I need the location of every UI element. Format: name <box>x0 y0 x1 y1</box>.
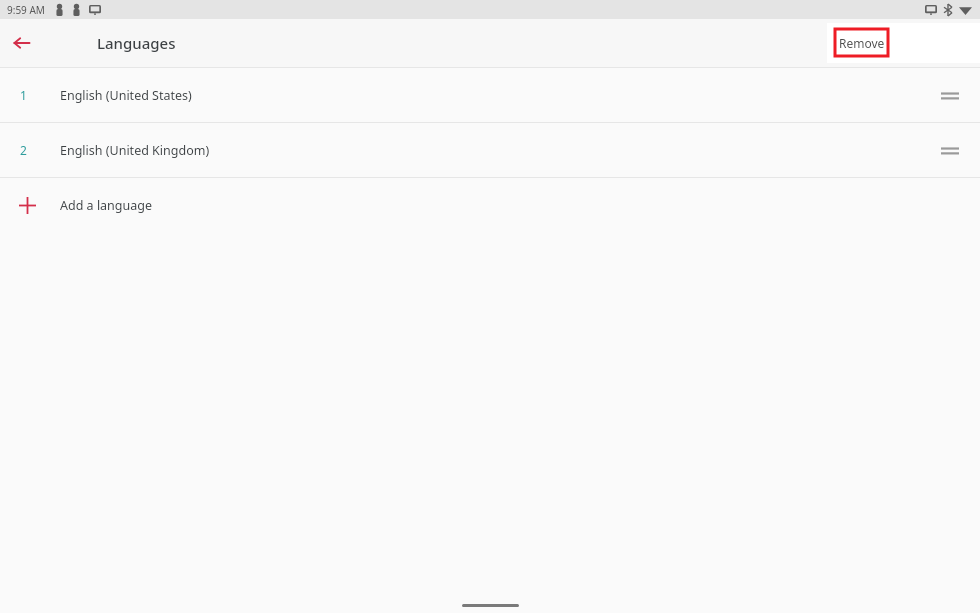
button[interactable]: Back <box>8 29 36 57</box>
staticText: 2 <box>20 142 36 158</box>
staticText: English (United Kingdom) <box>60 142 210 159</box>
staticText: 1 <box>20 87 36 103</box>
staticText: English (United States) <box>60 87 192 104</box>
staticText: Languages <box>97 33 176 53</box>
staticText: Remove <box>839 35 885 51</box>
staticText: 9:59 AM <box>7 3 45 17</box>
button[interactable]: Add a language <box>0 178 980 232</box>
button[interactable]: Reorder <box>939 139 961 161</box>
button[interactable]: 2 <box>0 123 980 177</box>
button[interactable]: Remove <box>835 29 888 56</box>
button[interactable]: Reorder <box>939 84 961 106</box>
button[interactable]: 1 <box>0 68 980 122</box>
staticText: Add a language <box>60 197 153 214</box>
